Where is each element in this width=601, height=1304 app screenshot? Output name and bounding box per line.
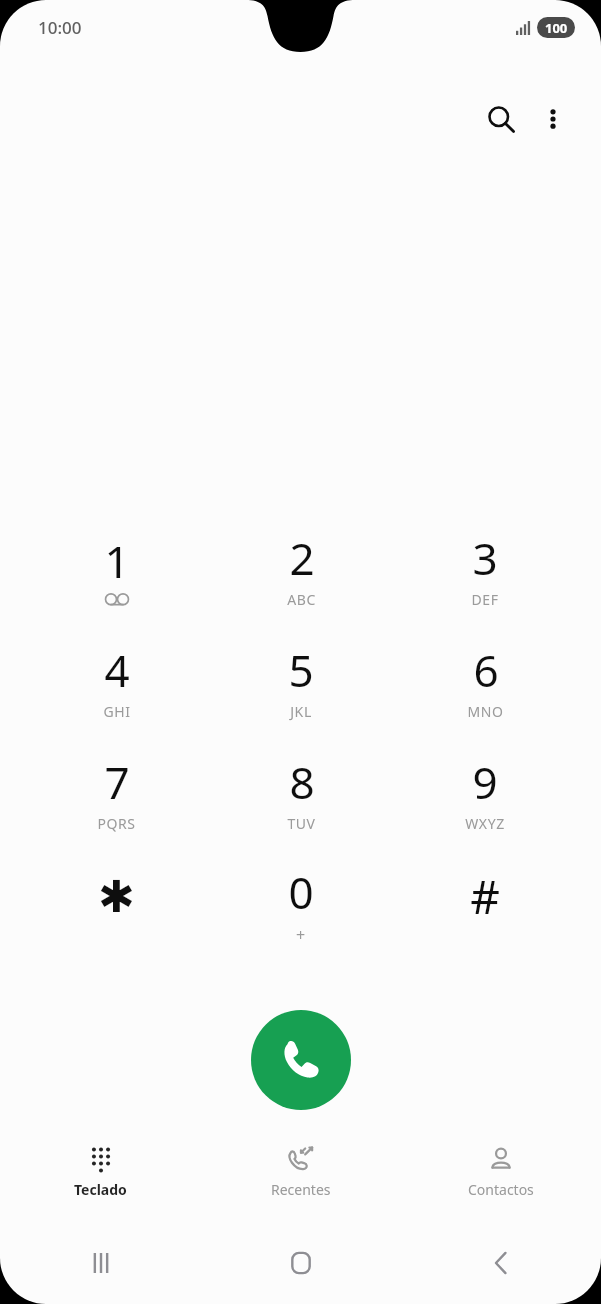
- staticText: ✱: [98, 871, 135, 922]
- staticText: 8: [289, 752, 315, 812]
- button[interactable]: 7: [24, 736, 209, 848]
- button[interactable]: Teclado: [0, 1138, 201, 1220]
- button[interactable]: Call: [251, 1010, 351, 1110]
- button[interactable]: 4: [24, 624, 209, 736]
- button[interactable]: 1: [24, 512, 209, 624]
- staticText: 6: [473, 640, 499, 700]
- button[interactable]: #: [393, 848, 577, 960]
- staticText: MNO: [467, 702, 504, 721]
- staticText: 7: [104, 752, 130, 812]
- button[interactable]: 5: [209, 624, 393, 736]
- button[interactable]: Search: [475, 93, 527, 145]
- staticText: Recentes: [271, 1180, 331, 1199]
- staticText: 1: [104, 531, 130, 591]
- staticText: DEF: [471, 590, 499, 609]
- staticText: PQRS: [97, 814, 136, 833]
- staticText: #: [470, 865, 500, 928]
- staticText: ABC: [287, 590, 316, 609]
- staticText: GHI: [103, 702, 131, 721]
- staticText: 10:00: [38, 16, 82, 39]
- button[interactable]: Recentes: [201, 1138, 401, 1220]
- staticText: Teclado: [74, 1180, 127, 1199]
- staticText: TUV: [287, 814, 316, 833]
- button[interactable]: Recent apps: [0, 1230, 201, 1304]
- staticText: 9: [472, 752, 498, 812]
- button[interactable]: 6: [393, 624, 577, 736]
- button[interactable]: 9: [393, 736, 577, 848]
- button[interactable]: More options: [527, 93, 579, 145]
- staticText: +: [296, 924, 306, 946]
- staticText: Contactos: [468, 1180, 534, 1199]
- button[interactable]: Home: [201, 1230, 401, 1304]
- staticText: 2: [289, 528, 315, 588]
- button[interactable]: Back: [401, 1230, 601, 1304]
- staticText: JKL: [290, 702, 312, 721]
- staticText: 3: [472, 528, 498, 588]
- staticText: WXYZ: [465, 814, 505, 833]
- button[interactable]: 0: [209, 848, 393, 960]
- button[interactable]: 2: [209, 512, 393, 624]
- button[interactable]: 3: [393, 512, 577, 624]
- staticText: 0: [288, 862, 314, 922]
- staticText: 100: [545, 19, 568, 37]
- staticText: 4: [104, 640, 130, 700]
- button[interactable]: Contactos: [401, 1138, 601, 1220]
- button[interactable]: 8: [209, 736, 393, 848]
- button[interactable]: ✱: [24, 848, 209, 960]
- staticText: 5: [288, 640, 314, 700]
